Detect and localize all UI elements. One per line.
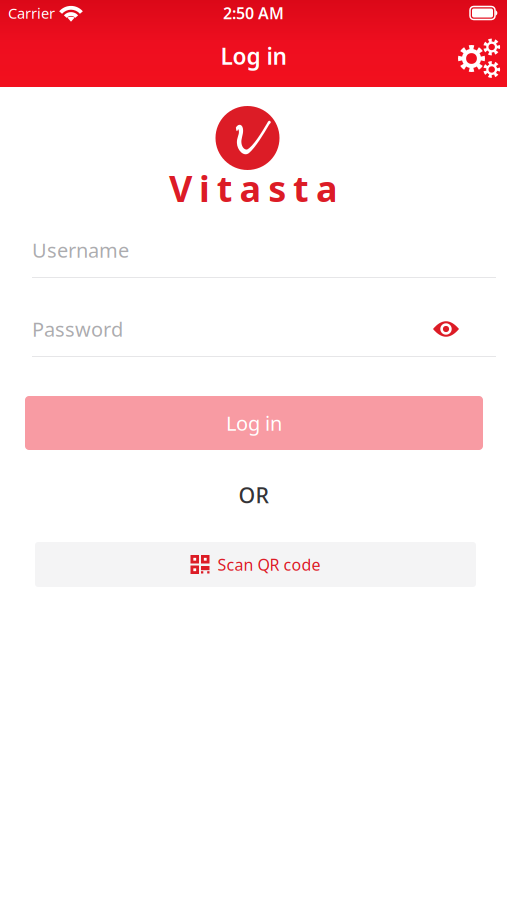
staticText: Scan QR code [217,554,320,575]
staticText: 2:50 AM [223,2,284,24]
staticText: Password [32,316,123,342]
staticText: Username [32,237,129,263]
button[interactable]: Log in [25,396,483,450]
staticText: OR [238,481,268,509]
staticText: Vitasta [169,164,338,212]
button[interactable]: Scan QR code [35,542,476,587]
staticText: Log in [226,410,282,436]
button[interactable]: Settings [458,32,501,79]
staticText: Log in [220,41,286,71]
button[interactable]: Show password [433,320,459,337]
staticText: Carrier [8,3,55,23]
